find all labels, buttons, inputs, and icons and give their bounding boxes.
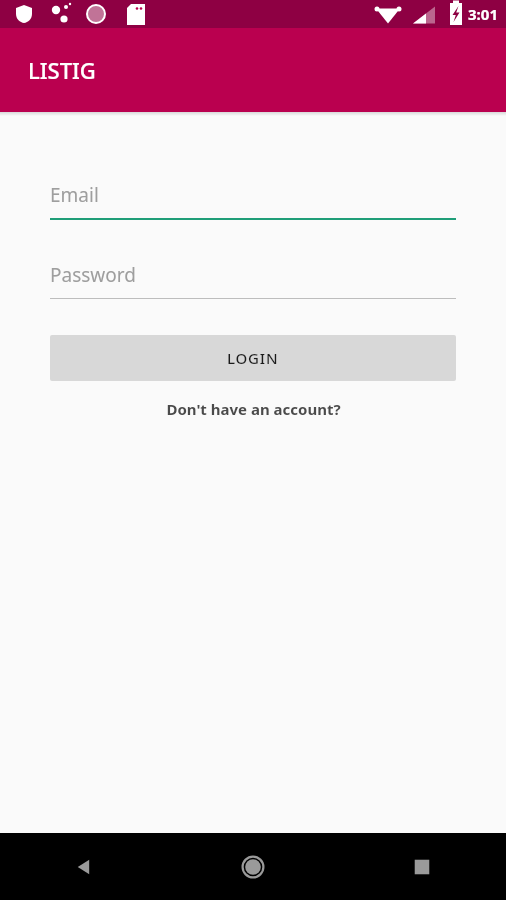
staticText: Email: [50, 182, 99, 208]
button[interactable]: Home: [168, 833, 337, 900]
button[interactable]: Email: [50, 178, 456, 220]
staticText: Password: [50, 262, 136, 288]
staticText: LISTIG: [28, 55, 96, 85]
staticText: LOGIN: [227, 348, 279, 368]
button[interactable]: LOGIN: [50, 335, 456, 381]
button[interactable]: Recent apps: [337, 833, 506, 900]
button[interactable]: Don't have an account?: [50, 399, 456, 419]
staticText: Don't have an account?: [166, 399, 341, 419]
staticText: 3:01: [468, 4, 498, 24]
button[interactable]: Back: [0, 833, 168, 900]
button[interactable]: Password: [50, 258, 456, 299]
